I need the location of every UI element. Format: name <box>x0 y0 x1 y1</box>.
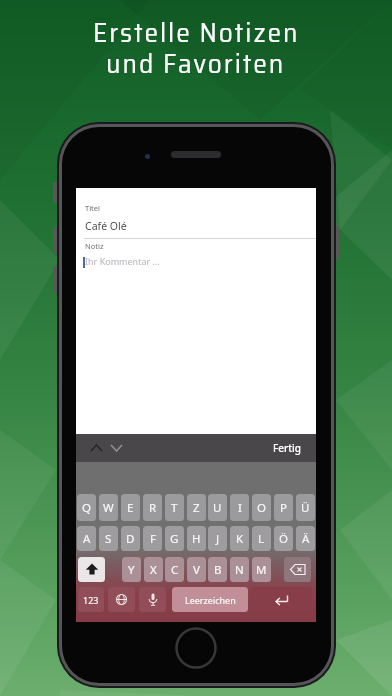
staticText: A <box>83 531 91 547</box>
staticText: R <box>149 500 157 516</box>
staticText: B <box>214 562 222 578</box>
staticText: Leerzeichen <box>185 594 236 606</box>
button[interactable]: N <box>230 557 249 582</box>
staticText: F <box>150 531 156 547</box>
button[interactable]: V <box>187 557 206 582</box>
button[interactable]: Ö <box>274 526 293 551</box>
button[interactable]: 123 <box>78 587 104 612</box>
staticText: Notiz <box>85 241 104 251</box>
staticText: und Favoriten <box>106 42 286 85</box>
button[interactable]: T <box>165 494 184 521</box>
button[interactable]: A <box>77 526 96 551</box>
button[interactable]: W <box>99 494 118 521</box>
staticText: V <box>193 562 200 578</box>
staticText: N <box>235 562 244 578</box>
button[interactable] <box>78 557 105 582</box>
button[interactable]: O <box>252 494 271 521</box>
staticText: Ö <box>279 531 288 547</box>
button[interactable] <box>139 587 166 612</box>
staticText: E <box>127 500 134 516</box>
button[interactable] <box>284 557 311 582</box>
button[interactable]: H <box>187 526 206 551</box>
button[interactable]: M <box>252 557 271 582</box>
staticText: Ü <box>301 500 310 516</box>
button[interactable] <box>91 442 122 454</box>
button[interactable] <box>108 587 135 612</box>
button[interactable]: K <box>230 526 249 551</box>
staticText: Y <box>128 562 135 578</box>
button[interactable]: P <box>274 494 293 521</box>
staticText: D <box>126 531 135 547</box>
staticText: Z <box>193 500 200 516</box>
button[interactable]: Z <box>187 494 206 521</box>
button[interactable]: G <box>165 526 184 551</box>
button[interactable]: F <box>143 526 162 551</box>
button[interactable]: X <box>144 557 163 582</box>
button[interactable]: Ä <box>296 526 315 551</box>
staticText: P <box>280 500 287 516</box>
staticText: L <box>258 531 265 547</box>
button[interactable]: Café Olé <box>85 219 127 233</box>
staticText: G <box>170 531 179 547</box>
button[interactable]: Fertig <box>273 441 301 455</box>
staticText: Ä <box>302 531 310 547</box>
button[interactable]: R <box>143 494 162 521</box>
staticText: Erstelle Notizen <box>93 11 300 54</box>
staticText: T <box>171 500 178 516</box>
button[interactable]: C <box>165 557 184 582</box>
button[interactable]: L <box>252 526 271 551</box>
staticText: 123 <box>83 594 99 606</box>
button[interactable]: I <box>230 494 249 521</box>
staticText: W <box>103 500 114 516</box>
button[interactable]: E <box>121 494 140 521</box>
button[interactable]: D <box>121 526 140 551</box>
staticText: U <box>213 500 222 516</box>
button[interactable]: S <box>99 526 118 551</box>
button[interactable] <box>251 587 312 612</box>
staticText: O <box>257 500 266 516</box>
staticText: I <box>238 500 242 516</box>
button[interactable]: Y <box>122 557 141 582</box>
staticText: M <box>256 562 267 578</box>
staticText: H <box>192 531 201 547</box>
staticText: X <box>150 562 157 578</box>
staticText: C <box>171 562 179 578</box>
button[interactable]: Q <box>77 494 96 521</box>
staticText: K <box>236 531 244 547</box>
staticText: S <box>105 531 112 547</box>
button[interactable]: B <box>208 557 227 582</box>
button[interactable]: J <box>208 526 227 551</box>
staticText: Q <box>82 500 91 516</box>
staticText: Titel <box>85 203 100 213</box>
button[interactable]: Ü <box>296 494 315 521</box>
staticText: J <box>216 531 220 547</box>
button[interactable]: U <box>208 494 227 521</box>
button[interactable]: Ihr Kommentar ... <box>85 255 160 267</box>
button[interactable]: Leerzeichen <box>172 587 248 612</box>
